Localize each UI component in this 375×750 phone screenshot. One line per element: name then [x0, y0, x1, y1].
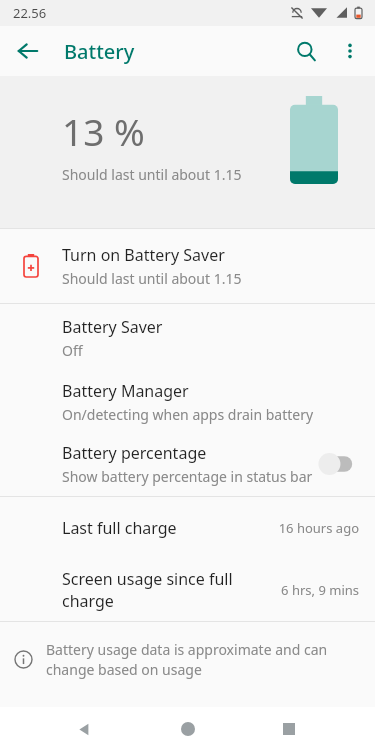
button[interactable]: Turn on Battery Saver — [0, 229, 375, 303]
staticText: Off — [62, 341, 83, 360]
staticText: Battery percentage — [62, 442, 207, 464]
button[interactable]: Back — [66, 711, 102, 747]
staticText: 22.56 — [13, 4, 47, 22]
staticText: Last full charge — [62, 517, 177, 539]
staticText: Battery — [64, 38, 135, 65]
button[interactable]: Battery percentage — [0, 432, 375, 496]
button[interactable]: Last full charge — [0, 497, 375, 559]
staticText: Screen usage since full charge — [62, 568, 269, 612]
staticText: Should last until about 1.15 — [62, 165, 242, 184]
button[interactable]: Battery Saver — [0, 304, 375, 368]
staticText: Turn on Battery Saver — [62, 244, 225, 266]
button[interactable]: More options — [328, 29, 372, 73]
staticText: 16 hours ago — [278, 519, 359, 537]
staticText: Battery Saver — [62, 316, 163, 338]
staticText: On/detecting when apps drain battery — [62, 405, 314, 424]
button[interactable]: Back — [7, 30, 49, 72]
button[interactable]: Home — [170, 711, 206, 747]
button[interactable]: Search — [284, 29, 328, 73]
staticText: Show battery percentage in status bar — [62, 467, 313, 486]
staticText: 6 hrs, 9 mins — [281, 581, 359, 599]
staticText: Battery usage data is approximate and ca… — [46, 640, 349, 679]
staticText: Battery Manager — [62, 380, 189, 402]
button[interactable]: Battery Manager — [0, 368, 375, 432]
button[interactable]: Recents — [271, 711, 307, 747]
staticText: Should last until about 1.15 — [62, 269, 242, 288]
staticText: 13 % — [62, 106, 145, 156]
button[interactable]: Screen usage since full charge — [0, 559, 375, 621]
